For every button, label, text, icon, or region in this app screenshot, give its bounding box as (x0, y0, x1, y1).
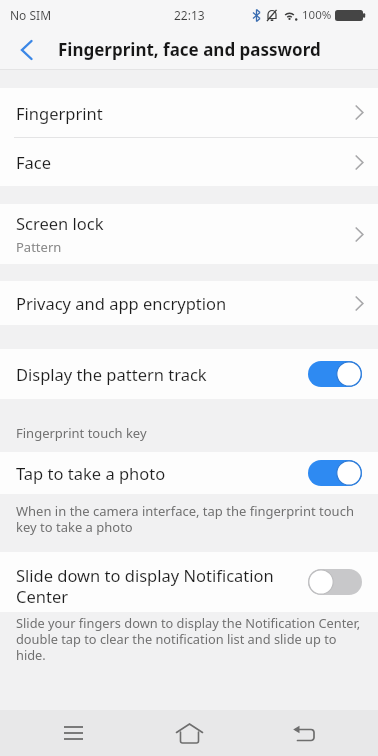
staticText: Fingerprint (16, 102, 103, 124)
staticText: Fingerprint touch key (16, 424, 147, 442)
staticText: Privacy and app encryption (16, 292, 227, 314)
staticText: Display the pattern track (16, 363, 308, 385)
staticText: 100% (302, 7, 332, 23)
button[interactable]: Fingerprint (0, 88, 378, 137)
staticText: When in the camera interface, tap the fi… (16, 502, 354, 535)
staticText: Slide your fingers down to display the N… (16, 614, 361, 663)
button[interactable] (167, 710, 211, 756)
staticText: 22:13 (174, 7, 205, 23)
staticText: Slide down to display Notification Cente… (16, 564, 308, 608)
button[interactable]: Tap to take a photo (0, 452, 378, 494)
staticText: No SIM (10, 7, 52, 23)
button[interactable]: Slide down to display Notification Cente… (0, 552, 378, 612)
button[interactable] (8, 32, 44, 68)
staticText: Tap to take a photo (16, 462, 308, 484)
button[interactable] (51, 710, 95, 756)
staticText: Face (16, 151, 52, 173)
button[interactable] (282, 710, 326, 756)
button[interactable]: Display the pattern track (0, 349, 378, 399)
staticText: Pattern (16, 238, 62, 256)
button[interactable]: Face (0, 138, 378, 186)
button[interactable]: Privacy and app encryption (0, 281, 378, 325)
staticText: Fingerprint, face and password (58, 38, 321, 61)
staticText: Screen lock (16, 212, 104, 234)
button[interactable]: Screen lock (0, 204, 378, 264)
